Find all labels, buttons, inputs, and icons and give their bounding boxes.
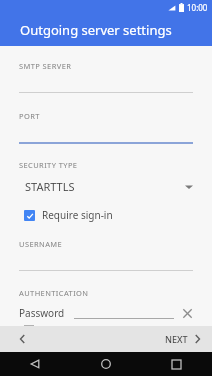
button[interactable]: NEXT (165, 333, 200, 345)
staticText: Outgoing server settings (20, 21, 172, 39)
button[interactable]: Home (70, 352, 141, 376)
staticText: AUTHENTICATION (19, 288, 89, 298)
staticText: PORT (19, 111, 40, 121)
staticText: USERNAME (19, 239, 63, 249)
button[interactable]: Previous (12, 329, 32, 349)
staticText: Password (19, 306, 65, 320)
button[interactable]: Require sign-in (19, 208, 113, 222)
staticText: NEXT (165, 333, 188, 345)
button[interactable]: Back (0, 352, 70, 376)
button[interactable]: STARTTLS (19, 179, 193, 194)
other: Expand security type (185, 184, 193, 190)
button[interactable]: Recent apps (141, 352, 212, 376)
staticText: SMTP SERVER (19, 61, 72, 71)
other: Clear password (182, 308, 193, 319)
button[interactable]: Password (19, 306, 193, 320)
staticText: Require sign-in (42, 208, 113, 222)
staticText: SECURITY TYPE (19, 160, 78, 170)
staticText: STARTTLS (25, 179, 75, 194)
staticText: 10:00 (187, 2, 208, 13)
